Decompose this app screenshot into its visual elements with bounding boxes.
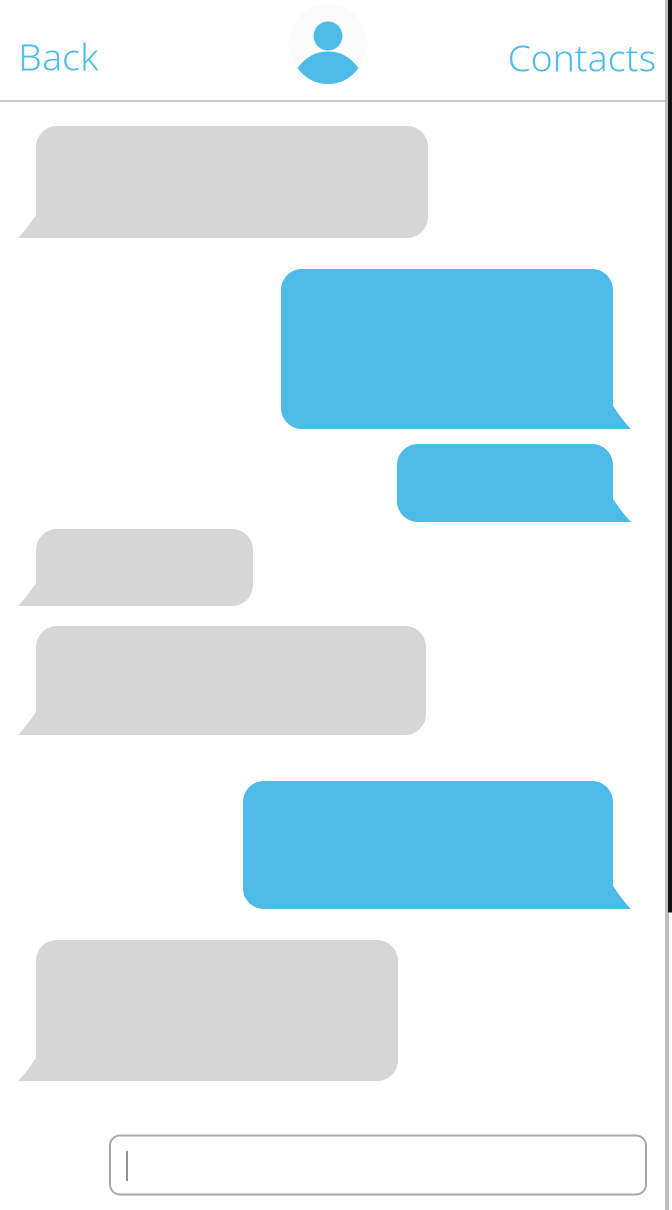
button[interactable]: Received message bbox=[36, 126, 428, 238]
button[interactable]: Back bbox=[18, 31, 98, 81]
button[interactable]: Contacts bbox=[507, 32, 656, 82]
button[interactable]: Sent message bbox=[281, 269, 613, 429]
button[interactable]: Profile bbox=[288, 4, 368, 84]
button[interactable]: Received message bbox=[36, 529, 253, 606]
staticText: Contacts bbox=[507, 32, 656, 82]
staticText: Back bbox=[18, 31, 98, 81]
button[interactable]: Sent message bbox=[397, 444, 613, 522]
button[interactable]: Received message bbox=[36, 626, 426, 735]
button[interactable]: Sent message bbox=[243, 781, 613, 909]
button[interactable]: Message bbox=[110, 1135, 646, 1194]
